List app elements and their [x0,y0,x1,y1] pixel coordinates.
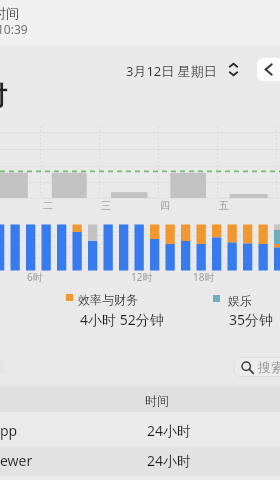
staticText: 时间 [145,393,169,408]
staticText: 时 [0,80,7,113]
staticText: 三 [101,199,111,212]
staticText: 18时 [193,270,215,284]
staticText: 24小时 [147,421,192,440]
button[interactable] [0,412,280,446]
staticText: 4小时 52分钟 [80,310,164,329]
staticText: 10:39 [0,21,28,37]
staticText: 五 [219,199,229,212]
staticText: 24小时 [147,451,192,470]
staticText: 时间 [0,5,19,21]
staticText: 二 [43,199,53,212]
staticText: 效率与财务 [78,292,138,307]
button[interactable] [0,446,280,476]
button[interactable]: Previous day [257,58,280,81]
staticText: 6时 [27,270,43,284]
staticText: 搜索 [258,359,280,375]
staticText: ewer [0,451,33,470]
staticText: 12时 [131,270,153,284]
staticText: 35分钟 [229,310,274,329]
staticText: 3月12日 星期日 [126,62,217,80]
staticText: 四 [160,199,170,212]
button[interactable]: Change date [222,58,244,81]
staticText: 娱乐 [228,293,252,308]
button[interactable]: 搜索 [234,357,280,377]
staticText: pp [0,421,18,440]
